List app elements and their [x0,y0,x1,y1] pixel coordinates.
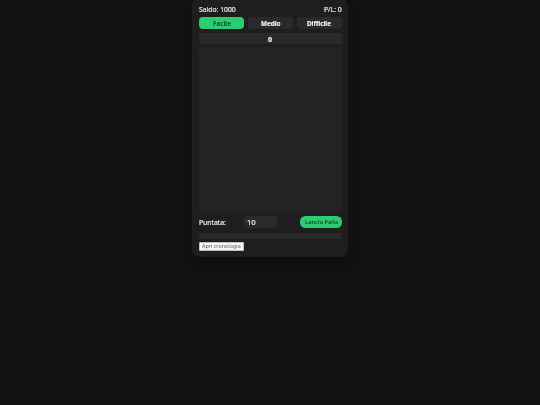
staticText: Facile [213,19,231,28]
staticText: Medio [261,19,281,28]
staticText: Apri cronologia [202,242,241,249]
button[interactable]: Difficile [297,17,342,29]
button[interactable]: Medio [248,17,293,29]
staticText: Puntata: [199,218,226,227]
staticText: P/L: 0 [324,5,342,14]
button[interactable]: Lancia Palla [300,216,342,228]
button[interactable]: Apri cronologia [199,242,244,251]
staticText: 10 [247,217,256,227]
staticText: Lancia Palla [305,218,338,226]
staticText: Saldo: 1000 [199,5,236,14]
staticText: 0 [268,34,273,44]
button[interactable]: 10 [244,216,277,228]
staticText: Difficile [307,19,332,28]
button[interactable]: Facile [199,17,244,29]
